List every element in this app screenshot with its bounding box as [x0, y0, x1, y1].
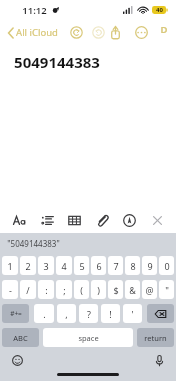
staticText: 5	[79, 260, 85, 272]
staticText: '	[131, 308, 134, 320]
staticText: &	[129, 284, 136, 296]
button[interactable]: ?	[79, 304, 98, 323]
button[interactable]: Emoji	[10, 353, 24, 367]
staticText: 9	[147, 260, 153, 272]
staticText: "	[165, 284, 169, 296]
button[interactable]: 2	[20, 256, 36, 275]
staticText: 0	[164, 260, 170, 272]
button[interactable]: 8	[125, 256, 140, 275]
staticText: 8	[130, 260, 136, 272]
staticText: ,	[65, 308, 68, 320]
button[interactable]: space	[43, 328, 133, 347]
button[interactable]: 1	[2, 256, 18, 275]
staticText: 4	[61, 260, 67, 272]
button[interactable]: 6	[91, 256, 106, 275]
button[interactable]: 5	[74, 256, 89, 275]
button[interactable]: Redo	[90, 24, 106, 40]
staticText: "5049144383"	[7, 238, 60, 249]
staticText: ;	[63, 284, 66, 296]
button[interactable]: Checklist	[38, 211, 56, 229]
staticText: 3	[43, 260, 49, 272]
button[interactable]: "	[159, 280, 174, 299]
staticText: !	[109, 308, 112, 320]
button[interactable]: Undo	[68, 24, 84, 40]
button[interactable]: More options	[132, 23, 150, 41]
staticText: $	[113, 284, 119, 296]
staticText: All iCloud	[16, 26, 58, 39]
button[interactable]: -	[2, 280, 18, 299]
staticText: ABC	[13, 333, 28, 343]
button[interactable]: )	[91, 280, 106, 299]
button[interactable]: #+=	[2, 304, 29, 323]
staticText: :	[45, 284, 48, 296]
button[interactable]: ,	[57, 304, 76, 323]
button[interactable]: Markup	[120, 211, 138, 229]
staticText: 2	[25, 260, 31, 272]
button[interactable]: "5049144383"	[5, 236, 62, 251]
staticText: ?	[87, 308, 91, 320]
button[interactable]: .	[34, 304, 54, 323]
staticText: (	[80, 284, 83, 296]
button[interactable]: &	[125, 280, 140, 299]
button[interactable]: ABC	[2, 328, 39, 347]
staticText: space	[78, 333, 99, 343]
button[interactable]: 7	[108, 256, 123, 275]
button[interactable]: All iCloud	[6, 23, 60, 42]
button[interactable]: :	[38, 280, 54, 299]
staticText: 5049144383	[14, 52, 100, 72]
button[interactable]: 9	[142, 256, 157, 275]
button[interactable]: Dictate	[152, 353, 166, 367]
button[interactable]: /	[20, 280, 36, 299]
button[interactable]: 0	[159, 256, 174, 275]
staticText: #+=	[10, 309, 22, 318]
staticText: )	[97, 284, 100, 296]
button[interactable]: (	[74, 280, 89, 299]
button[interactable]: Done	[158, 20, 170, 44]
button[interactable]: return	[137, 328, 174, 347]
button[interactable]: 3	[38, 256, 54, 275]
button[interactable]: 4	[56, 256, 72, 275]
staticText: /	[26, 284, 30, 296]
staticText: return	[144, 333, 167, 343]
staticText: 6	[96, 260, 102, 272]
button[interactable]: Text format	[10, 211, 28, 229]
button[interactable]: Attach	[93, 211, 111, 229]
button[interactable]: ;	[56, 280, 72, 299]
staticText: Done	[160, 23, 168, 41]
button[interactable]: Share	[106, 23, 124, 41]
button[interactable]: $	[108, 280, 123, 299]
staticText: 7	[113, 260, 119, 272]
staticText: .	[43, 308, 46, 320]
button[interactable]: '	[123, 304, 142, 323]
staticText: 40	[156, 6, 163, 14]
staticText: 1	[7, 260, 13, 272]
button[interactable]: !	[101, 304, 120, 323]
button[interactable]: @	[142, 280, 157, 299]
button[interactable]: Close keyboard	[148, 211, 166, 229]
staticText: 11:12	[22, 4, 47, 17]
button[interactable]: Delete	[147, 304, 174, 323]
button[interactable]: Table	[65, 211, 83, 229]
staticText: -	[9, 284, 12, 296]
staticText: @	[145, 284, 154, 296]
